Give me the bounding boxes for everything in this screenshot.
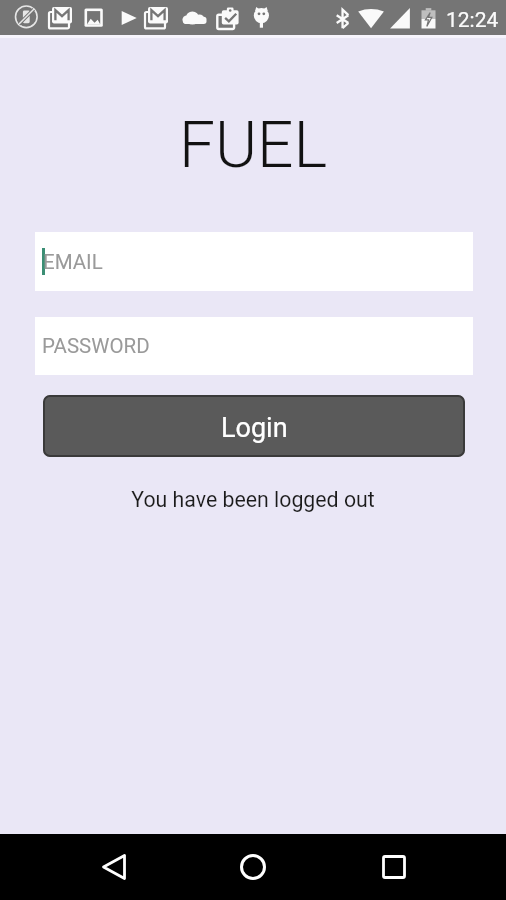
staticText: EMAIL: [43, 250, 103, 274]
button[interactable]: PASSWORD: [35, 317, 473, 375]
staticText: FUEL: [0, 108, 506, 183]
button[interactable]: Back: [82, 834, 146, 900]
staticText: PASSWORD: [42, 334, 150, 358]
button[interactable]: EMAIL: [35, 232, 473, 291]
button[interactable]: Home: [221, 834, 285, 900]
staticText: You have been logged out: [0, 487, 506, 512]
button[interactable]: Login: [43, 395, 465, 457]
staticText: 12:24: [446, 8, 499, 33]
staticText: Login: [221, 412, 288, 444]
button[interactable]: Recent apps: [362, 834, 426, 900]
